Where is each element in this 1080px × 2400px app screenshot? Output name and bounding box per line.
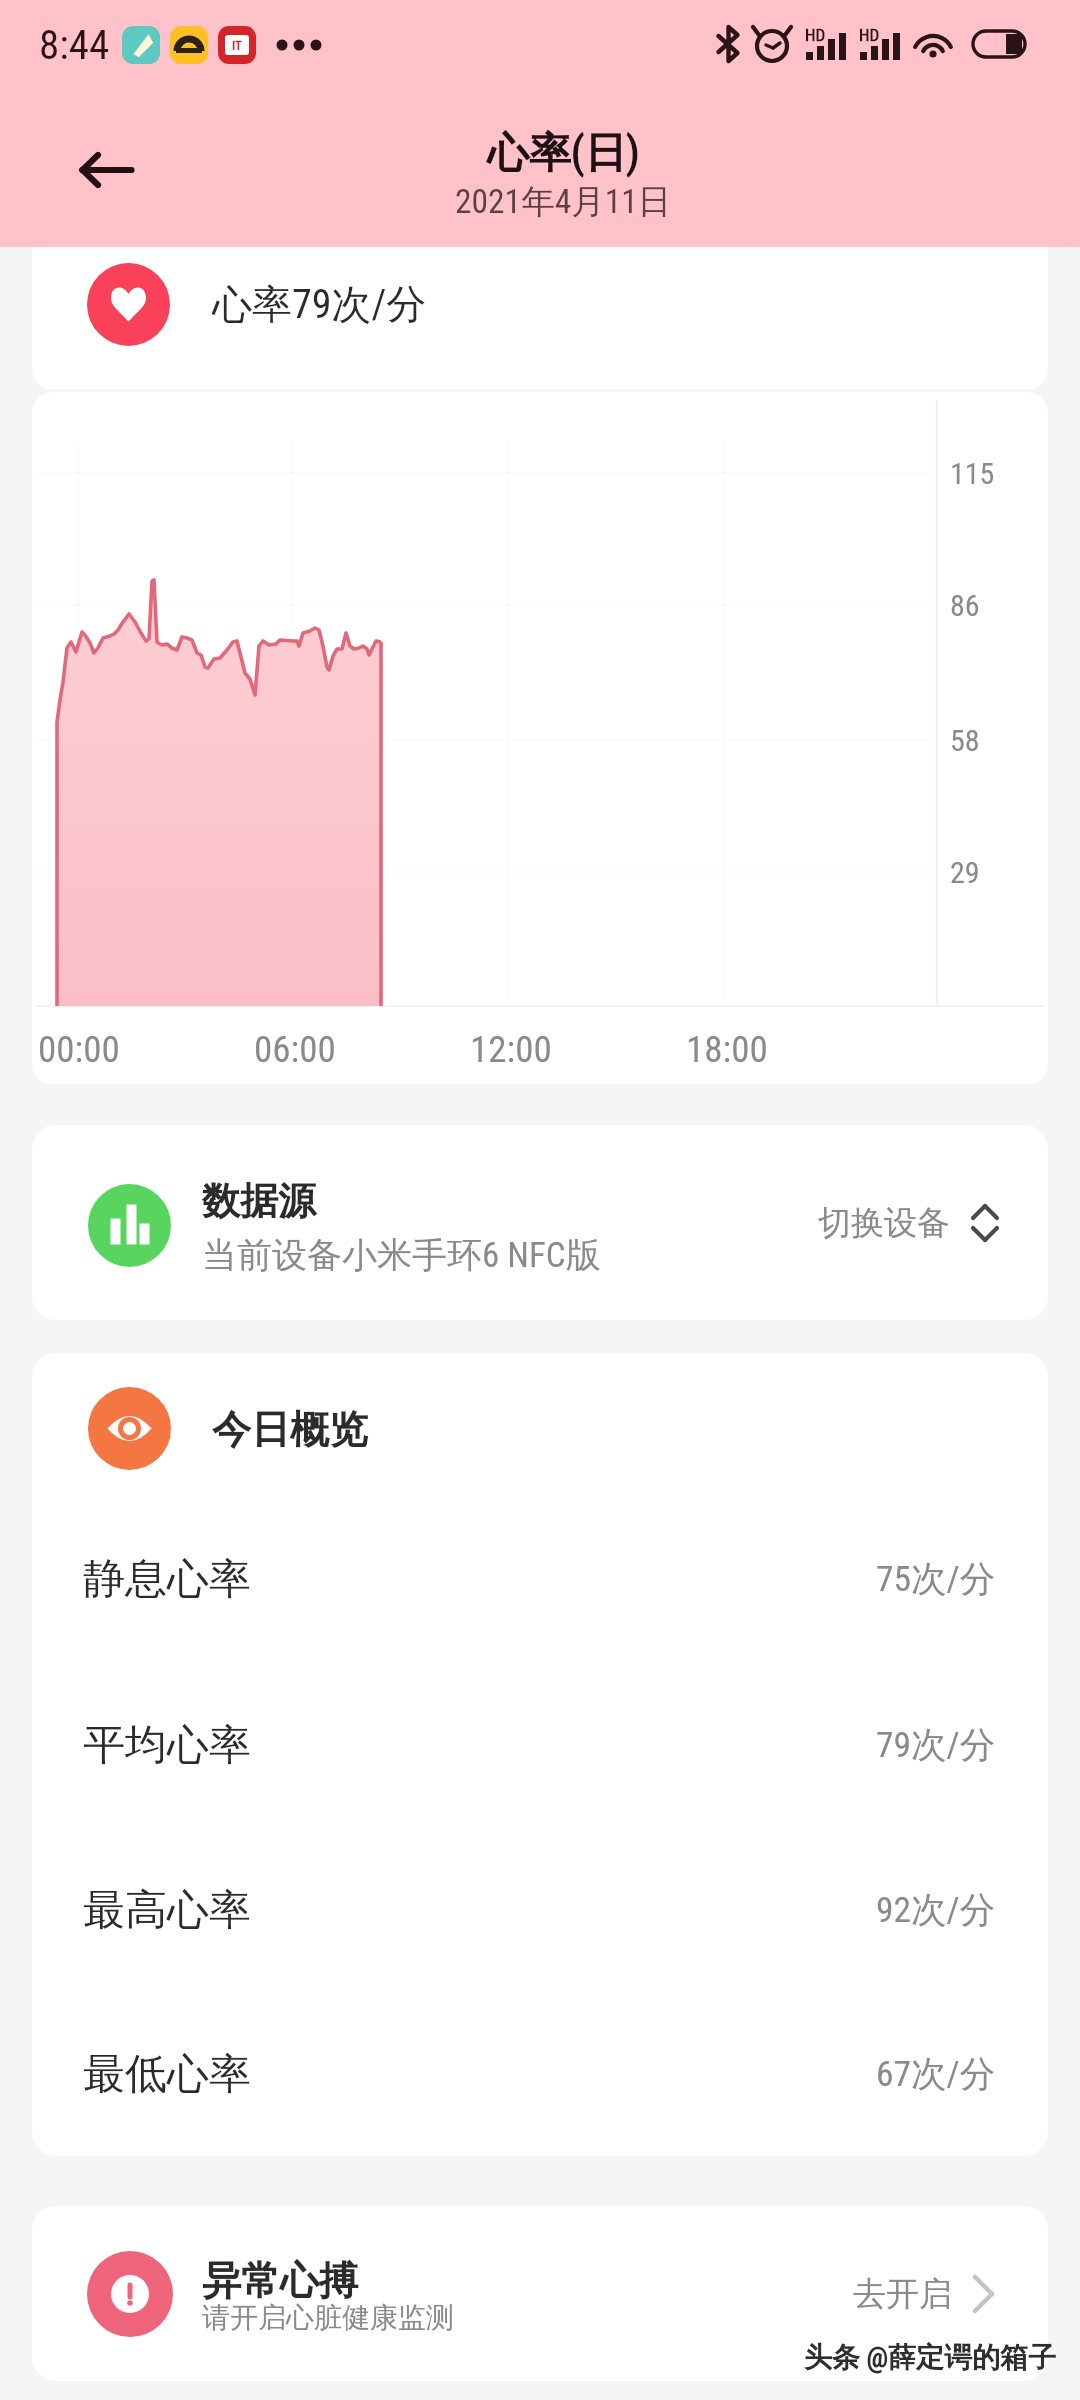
staticText: 2021年4月11日 xyxy=(455,181,672,223)
button[interactable]: 异常心搏 xyxy=(32,2206,1048,2381)
staticText: 67次/分 xyxy=(876,2052,996,2097)
staticText: 心率79次/分 xyxy=(212,279,427,329)
staticText: 29 xyxy=(950,855,980,890)
staticText: 12:00 xyxy=(470,1028,552,1071)
staticText: 8:44 xyxy=(39,21,110,69)
staticText: IT xyxy=(232,38,242,53)
staticText: 今日概览 xyxy=(212,1405,368,1454)
staticText: 115 xyxy=(950,456,995,491)
staticText: 18:00 xyxy=(686,1028,768,1071)
staticText: 异常心搏 xyxy=(202,2256,358,2305)
staticText: 心率(日) xyxy=(487,127,640,180)
button[interactable]: Back xyxy=(62,125,152,215)
staticText: 06:00 xyxy=(254,1028,336,1071)
staticText: 92次/分 xyxy=(876,1888,996,1933)
staticText: 最高心率 xyxy=(83,1884,251,1937)
staticText: 请开启心脏健康监测 xyxy=(202,2300,454,2335)
staticText: 静息心率 xyxy=(83,1553,251,1606)
staticText: HD xyxy=(805,25,826,45)
staticText: 平均心率 xyxy=(83,1719,251,1772)
button[interactable]: 平均心率 xyxy=(83,1662,996,1828)
staticText: 去开启 xyxy=(853,2273,952,2315)
staticText: 头条 @薛定谔的箱子 xyxy=(804,2340,1056,2375)
button[interactable]: 最低心率 xyxy=(83,1992,996,2156)
staticText: 数据源 xyxy=(202,1177,316,1225)
staticText: 最低心率 xyxy=(83,2048,251,2101)
staticText: 79次/分 xyxy=(876,1723,996,1768)
button[interactable]: 数据源 xyxy=(32,1125,1048,1320)
staticText: 切换设备 xyxy=(818,1202,950,1244)
button[interactable]: 静息心率 xyxy=(83,1496,996,1662)
staticText: 00:00 xyxy=(38,1028,120,1071)
staticText: 86 xyxy=(950,588,980,623)
staticText: 75次/分 xyxy=(876,1557,996,1602)
staticText: 当前设备小米手环6 NFC版 xyxy=(202,1233,601,1277)
staticText: HD xyxy=(859,25,880,45)
staticText: 58 xyxy=(950,723,980,758)
button[interactable]: 最高心率 xyxy=(83,1828,996,1992)
button[interactable]: 心率79次/分 xyxy=(32,247,1048,389)
